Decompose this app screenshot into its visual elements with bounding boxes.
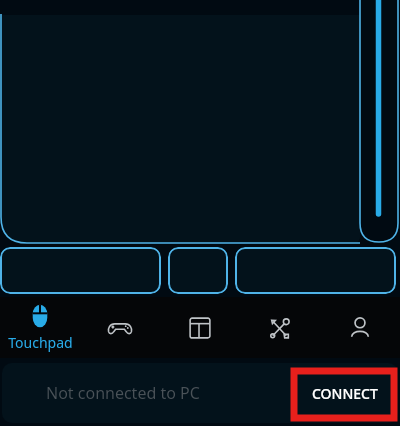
button[interactable]: Touchpad surface [0,15,360,243]
staticText: Not connected to PC [46,382,200,404]
staticText: Touchpad [8,333,73,352]
button[interactable]: CONNECT [298,374,392,413]
button[interactable]: Gamepad [80,297,160,358]
button[interactable]: Profile [320,297,400,358]
button[interactable]: Tools [240,297,320,358]
button[interactable]: Right click [235,247,396,294]
staticText: CONNECT [312,384,378,403]
button[interactable]: Layout [160,297,240,358]
button[interactable]: Middle click [168,247,228,294]
button[interactable]: Touchpad [0,297,80,358]
button[interactable]: Left click [0,247,161,294]
